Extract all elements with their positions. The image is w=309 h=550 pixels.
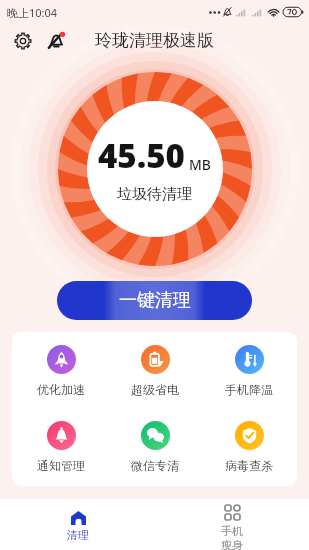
button[interactable]: 一键清理 (57, 281, 252, 320)
staticText: 45.50 (98, 133, 185, 178)
staticText: 垃圾待清理 (117, 185, 192, 204)
button[interactable]: Notifications (42, 27, 70, 55)
staticText: 手机降温 (225, 382, 273, 397)
staticText: 晚上10:04 (7, 5, 58, 20)
button[interactable]: 清理 (45, 499, 111, 550)
staticText: 一键清理 (119, 289, 191, 312)
button[interactable]: 超级省电 (113, 341, 197, 397)
staticText: 微信专清 (131, 458, 179, 473)
button[interactable]: 病毒查杀 (207, 417, 291, 473)
button[interactable]: Settings (9, 27, 37, 55)
staticText: 优化加速 (37, 382, 85, 397)
staticText: 超级省电 (131, 382, 179, 397)
staticText: 手机 (221, 524, 243, 538)
button[interactable]: 手机 (199, 499, 265, 550)
staticText: 病毒查杀 (225, 458, 273, 473)
staticText: MB (189, 155, 212, 174)
staticText: 玲珑清理极速版 (95, 30, 214, 51)
staticText: 清理 (67, 528, 89, 542)
button[interactable]: 优化加速 (19, 341, 103, 397)
staticText: 通知管理 (37, 458, 85, 473)
button[interactable]: 手机降温 (207, 341, 291, 397)
button[interactable]: 通知管理 (19, 417, 103, 473)
button[interactable]: 微信专清 (113, 417, 197, 473)
staticText: 瘦身 (221, 538, 243, 550)
